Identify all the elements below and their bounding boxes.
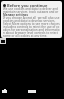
button[interactable]: Before you continue bbox=[1, 1, 62, 38]
staticText: some or all cookies at any time. bbox=[3, 34, 48, 37]
staticText: If you choose Accept all, we will also u… bbox=[3, 16, 60, 19]
staticText: Before you continue bbox=[7, 3, 48, 8]
staticText: We use cookies and data to deliver and bbox=[3, 7, 58, 10]
button[interactable]: Logo bbox=[2, 89, 8, 93]
staticText: including controls to reject the use of … bbox=[3, 25, 60, 28]
staticText: Manage settings bbox=[3, 13, 28, 16]
button[interactable]: Open menu bbox=[0, 38, 6, 44]
staticText: Select More options to see more choices, bbox=[3, 22, 61, 25]
staticText: okies for personalisation and informatio bbox=[3, 28, 60, 31]
staticText: maintain services, track outages and pr bbox=[3, 10, 59, 13]
staticText: cookies and data to develop services. bbox=[3, 19, 56, 22]
staticText: n about browser level controls to reject bbox=[3, 31, 58, 34]
